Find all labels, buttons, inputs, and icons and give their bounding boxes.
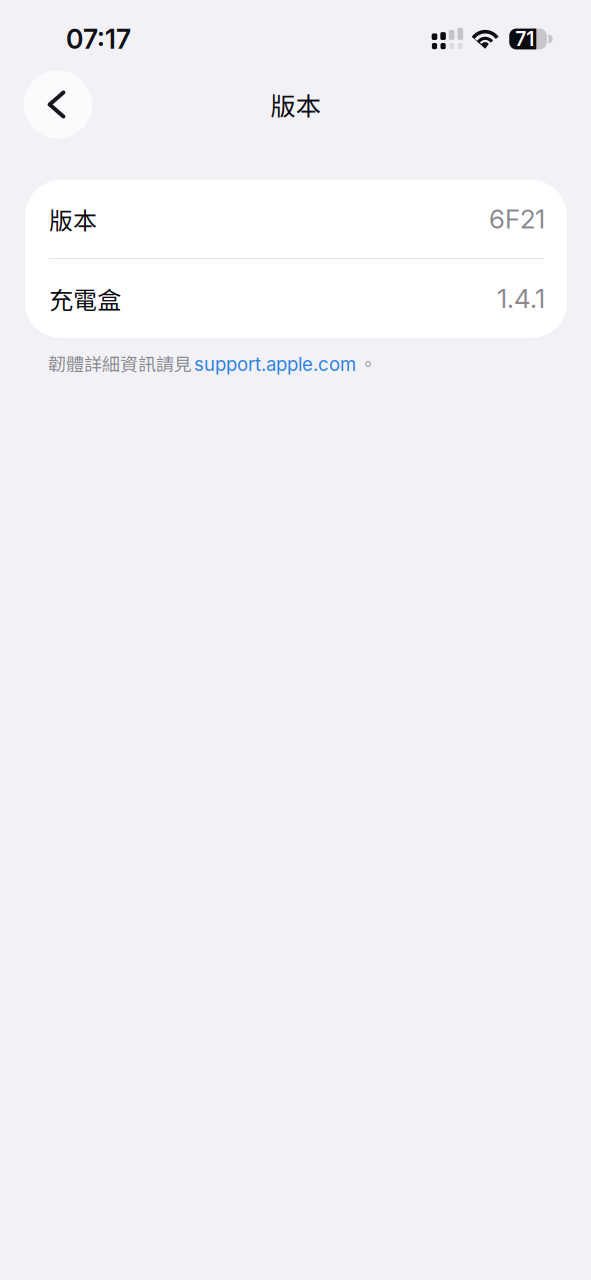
staticText: 07:17 bbox=[66, 23, 131, 55]
staticText: 71 bbox=[515, 27, 534, 51]
staticText: support.apple.com bbox=[194, 353, 356, 375]
button[interactable]: Back bbox=[24, 70, 92, 138]
staticText: 充電盒 bbox=[49, 281, 121, 316]
staticText: 1.4.1 bbox=[497, 283, 545, 314]
staticText: 。 bbox=[359, 350, 377, 376]
staticText: 6F21 bbox=[489, 203, 545, 235]
staticText: 版本 bbox=[270, 86, 320, 123]
staticText: 版本 bbox=[49, 202, 97, 236]
staticText: 韌體詳細資訊請見 bbox=[48, 350, 192, 376]
